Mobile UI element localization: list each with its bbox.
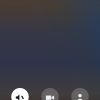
button[interactable]: Turn camera off [41,88,59,100]
button[interactable]: Participants [71,88,89,100]
button[interactable]: Mute [11,88,29,100]
